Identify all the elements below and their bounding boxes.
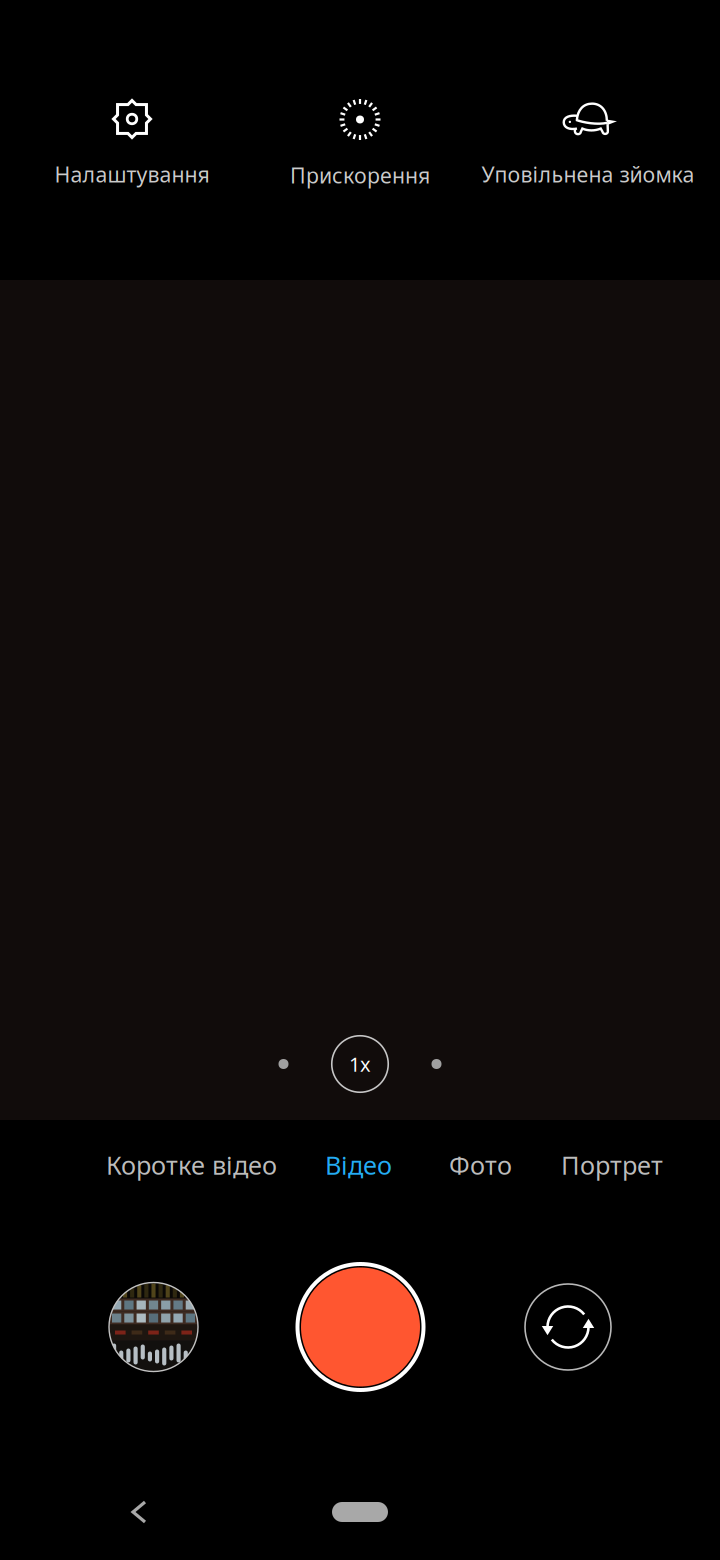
button[interactable]: 1x [332, 1036, 388, 1092]
button[interactable]: Уповільнена зйомка [474, 0, 702, 280]
staticText: Коротке відео [106, 1148, 277, 1182]
staticText: Налаштування [54, 160, 209, 188]
button[interactable]: Прискорення [246, 0, 474, 280]
button[interactable]: Switch camera [523, 1282, 613, 1372]
button[interactable]: Відео [325, 1120, 392, 1210]
staticText: Фото [449, 1148, 512, 1182]
staticText: 1x [349, 1051, 371, 1077]
button[interactable]: Портрет [561, 1120, 663, 1210]
staticText: Портрет [561, 1148, 663, 1182]
button[interactable]: Gallery [109, 1282, 198, 1371]
button[interactable]: Zoom in [416, 1044, 456, 1084]
button[interactable]: Коротке відео [106, 1120, 277, 1210]
button[interactable]: Zoom out [263, 1044, 303, 1084]
button[interactable]: Back [94, 1480, 184, 1544]
staticText: Прискорення [290, 161, 430, 189]
button[interactable]: Фото [449, 1120, 512, 1210]
button[interactable]: Home [300, 1480, 420, 1544]
button[interactable]: Налаштування [18, 0, 246, 280]
staticText: Уповільнена зйомка [481, 160, 694, 188]
button[interactable]: Record [294, 1261, 426, 1393]
staticText: Відео [325, 1148, 392, 1182]
